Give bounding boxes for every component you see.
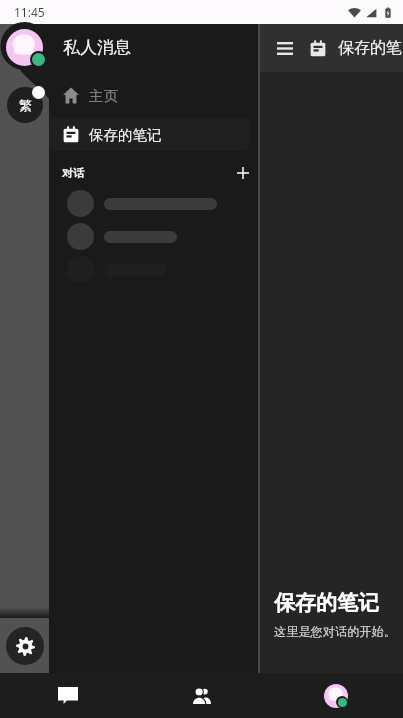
staticText: 繁 (19, 97, 32, 113)
staticText: 私人消息 (63, 37, 131, 58)
button[interactable]: 主页 (49, 79, 249, 112)
button[interactable]: You (269, 673, 403, 718)
staticText: 这里是您对话的开始。 (274, 624, 396, 639)
button[interactable]: Friends (135, 673, 269, 718)
staticText: 保存的笔记 (89, 126, 162, 144)
button[interactable]: New conversation (231, 161, 255, 185)
button[interactable]: Open navigation drawer (270, 33, 300, 63)
button[interactable]: Settings (0, 618, 49, 673)
staticText: 主页 (89, 87, 118, 105)
staticText: 11:45 (14, 4, 45, 20)
staticText: 保存的笔记 (338, 38, 403, 58)
button[interactable]: 繁 (0, 87, 49, 123)
staticText: 对话 (62, 166, 84, 180)
button[interactable]: Direct messages (0, 29, 49, 66)
button[interactable]: Messages (0, 673, 135, 718)
staticText: 保存的笔记 (274, 590, 379, 616)
button[interactable]: 保存的笔记 (49, 118, 249, 151)
